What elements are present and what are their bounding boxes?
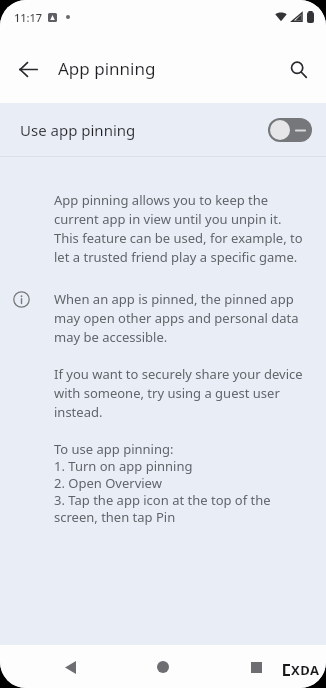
button[interactable]: Use app pinning <box>0 103 326 156</box>
button[interactable]: Search <box>278 49 318 89</box>
button[interactable]: Home <box>145 649 181 685</box>
staticText: 11:17 <box>14 10 43 25</box>
staticText: Use app pinning <box>20 120 136 140</box>
button[interactable]: Back <box>52 649 88 685</box>
button[interactable]: Use app pinning toggle <box>268 118 312 142</box>
staticText: App pinning <box>58 57 156 80</box>
staticText: App pinning allows you to keep the curre… <box>54 191 304 266</box>
staticText: If you want to securely share your devic… <box>54 365 304 421</box>
button[interactable]: Back <box>8 49 48 89</box>
staticText: XDA <box>291 661 320 679</box>
staticText: When an app is pinned, the pinned app ma… <box>54 290 304 346</box>
button[interactable]: Recent apps <box>238 649 274 685</box>
other: Information <box>13 291 30 308</box>
staticText: To use app pinning: 1. Turn on app pinni… <box>54 440 312 526</box>
